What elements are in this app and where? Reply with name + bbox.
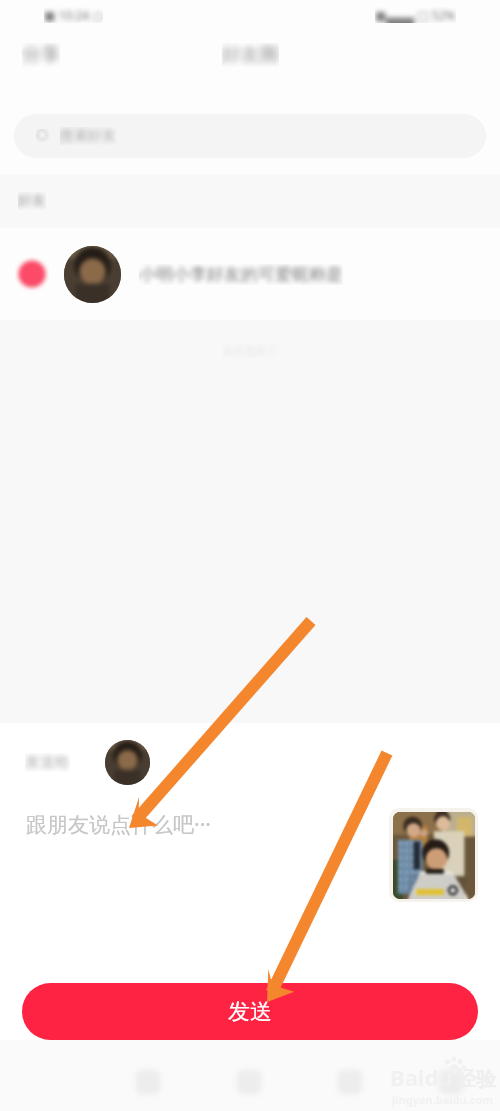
- staticText: ■▃▃▃ □ 52%: [375, 7, 456, 23]
- staticText: 发送: [228, 998, 272, 1026]
- button[interactable]: Navigation item: [332, 1062, 368, 1102]
- staticText: 小明小李好友的可爱昵称是: [139, 264, 343, 285]
- button[interactable]: 搜索好友: [14, 114, 486, 158]
- button[interactable]: Navigation item: [433, 1062, 469, 1102]
- staticText: 好友圈: [222, 43, 279, 67]
- staticText: 好友: [18, 192, 46, 210]
- staticText: 经验: [456, 1067, 496, 1092]
- staticText: jingyan.baidu.com: [392, 1092, 494, 1107]
- button[interactable]: Navigation item: [231, 1062, 267, 1102]
- button[interactable]: 发送: [22, 983, 478, 1040]
- staticText: 分享: [22, 43, 60, 67]
- button[interactable]: 小明小李好友的可爱昵称是: [0, 228, 500, 320]
- staticText: 跟朋友说点什么吧···: [26, 810, 211, 839]
- button[interactable]: Video thumbnail: [389, 808, 478, 902]
- staticText: 搜索好友: [60, 127, 116, 145]
- staticText: Baidu: [390, 1062, 453, 1092]
- staticText: 发送给: [25, 753, 70, 772]
- button[interactable]: Navigation item: [130, 1062, 166, 1102]
- staticText: ■ 10:24 ○: [44, 7, 103, 23]
